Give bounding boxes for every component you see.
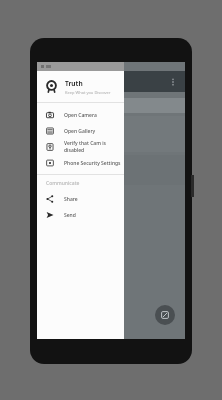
button[interactable] (37, 155, 185, 185)
staticText: Open Camera (64, 112, 97, 119)
staticText: Communicate (46, 180, 80, 187)
button[interactable]: Truth (37, 71, 124, 102)
staticText: Verify that Cam is disabled (64, 140, 124, 154)
button[interactable]: Share (37, 191, 124, 207)
staticText: Truth (65, 79, 83, 88)
staticText: Share (64, 196, 78, 203)
button[interactable]: Scan (155, 305, 175, 325)
button[interactable]: More options (166, 75, 180, 89)
button[interactable]: Detects Threat (37, 98, 185, 113)
button[interactable]: Open Camera (37, 107, 124, 123)
button[interactable] (37, 116, 185, 152)
staticText: Send (64, 212, 76, 219)
staticText: Open Gallery (64, 128, 96, 135)
staticText: Keep What you Discover (65, 90, 111, 95)
button[interactable]: Verify that Cam is disabled (37, 139, 124, 155)
staticText: Detects Threat (43, 102, 86, 110)
button[interactable]: Phone Security Settings (37, 155, 124, 171)
button[interactable]: Open Gallery (37, 123, 124, 139)
staticText: Phone Security Settings (64, 160, 121, 167)
button[interactable]: Send (37, 207, 124, 223)
